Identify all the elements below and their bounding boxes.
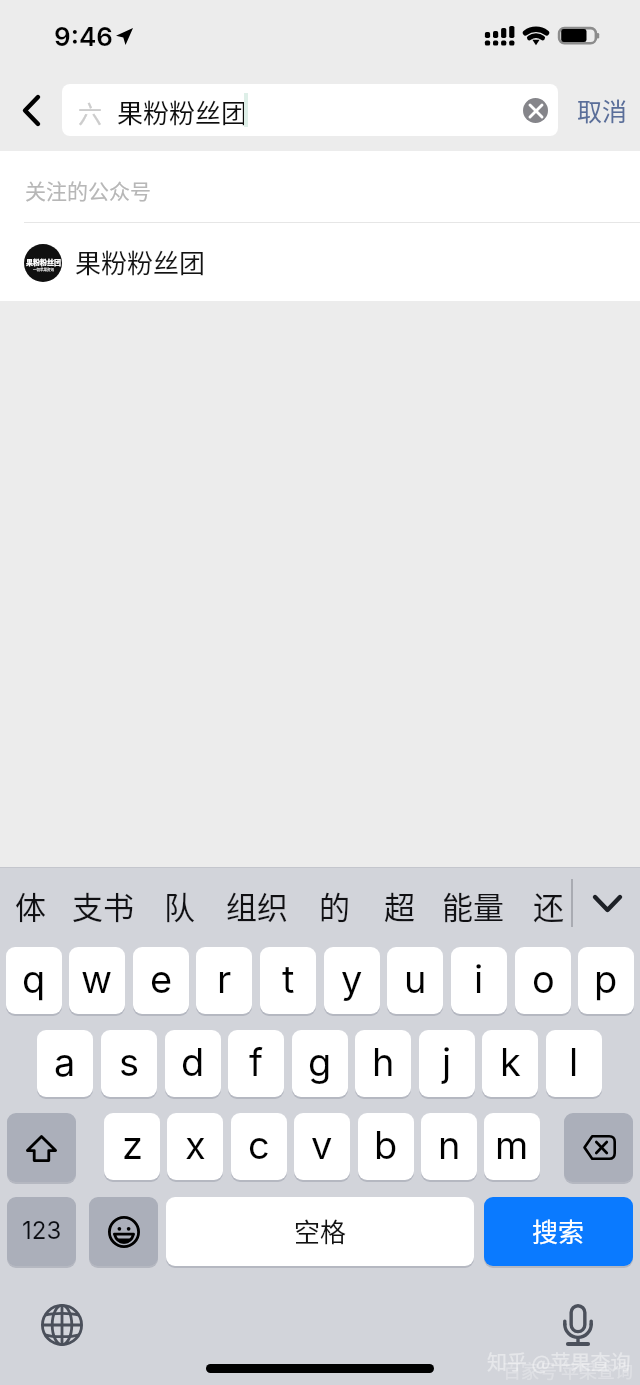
staticText: 体 (15, 883, 46, 928)
button[interactable]: l (546, 1030, 602, 1097)
button[interactable]: Back (0, 84, 62, 136)
button[interactable]: Switch keyboard (40, 1303, 84, 1347)
staticText: 能量 (442, 883, 504, 928)
staticText: f (249, 1039, 264, 1085)
button[interactable]: c (231, 1113, 287, 1180)
button[interactable]: 果粉粉丝团 (0, 223, 640, 300)
staticText: 果粉粉丝团 (26, 257, 61, 267)
button[interactable]: 还 (522, 875, 574, 935)
staticText: b (374, 1122, 398, 1168)
button[interactable]: p (578, 947, 634, 1014)
staticText: r (217, 956, 232, 1002)
button[interactable]: n (421, 1113, 477, 1180)
button[interactable]: Voice input (554, 1299, 602, 1347)
button[interactable]: s (101, 1030, 157, 1097)
staticText: g (308, 1039, 332, 1085)
button[interactable]: y (324, 947, 380, 1014)
button[interactable]: x (167, 1113, 223, 1180)
staticText: 空格 (294, 1212, 347, 1250)
button[interactable]: Clear text (523, 98, 548, 123)
button[interactable]: t (260, 947, 316, 1014)
button[interactable]: h (355, 1030, 411, 1097)
button[interactable]: g (292, 1030, 348, 1097)
button[interactable]: q (6, 947, 62, 1014)
staticText: 果粉粉丝团 (117, 93, 248, 131)
button[interactable]: w (69, 947, 125, 1014)
staticText: p (594, 956, 618, 1002)
staticText: 搜索 (532, 1212, 585, 1250)
button[interactable]: j (419, 1030, 475, 1097)
button[interactable]: 队 (153, 875, 205, 935)
staticText: j (442, 1039, 452, 1085)
button[interactable]: v (294, 1113, 350, 1180)
staticText: z (122, 1122, 143, 1168)
button[interactable]: m (484, 1113, 540, 1180)
button[interactable]: Hide keyboard (578, 867, 640, 945)
button[interactable]: i (451, 947, 507, 1014)
button[interactable]: Shift (7, 1113, 76, 1182)
button[interactable]: u (387, 947, 443, 1014)
staticText: v (311, 1122, 333, 1168)
staticText: y (341, 956, 363, 1002)
button[interactable]: z (104, 1113, 160, 1180)
button[interactable]: 六 (62, 84, 558, 136)
button[interactable]: 超 (373, 875, 425, 935)
button[interactable]: 123 (7, 1197, 76, 1266)
button[interactable]: 的 (308, 875, 360, 935)
button[interactable]: 支书 (62, 875, 144, 935)
button[interactable]: 能量 (432, 875, 514, 935)
staticText: 组织 (226, 883, 288, 928)
button[interactable]: 组织 (216, 875, 298, 935)
staticText: 支书 (72, 883, 134, 928)
staticText: 123 (22, 1216, 62, 1245)
button[interactable]: d (165, 1030, 221, 1097)
staticText: 超 (384, 883, 415, 928)
staticText: u (404, 956, 427, 1002)
staticText: a (54, 1039, 76, 1085)
button[interactable]: 搜索 (484, 1197, 633, 1266)
staticText: d (181, 1039, 205, 1085)
staticText: h (372, 1039, 395, 1085)
button[interactable]: b (358, 1113, 414, 1180)
staticText: w (81, 956, 113, 1002)
staticText: l (569, 1039, 579, 1085)
button[interactable]: a (37, 1030, 93, 1097)
button[interactable]: 取消 (564, 84, 640, 136)
staticText: 一切苹果资讯 (33, 267, 54, 272)
staticText: 百家号 苹果查询 (503, 1357, 634, 1383)
button[interactable]: Emoji keyboard (89, 1197, 158, 1266)
staticText: e (150, 956, 173, 1002)
staticText: 关注的公众号 (25, 175, 151, 205)
button[interactable]: f (228, 1030, 284, 1097)
staticText: o (532, 956, 555, 1002)
button[interactable]: 空格 (166, 1197, 474, 1266)
staticText: t (282, 956, 295, 1002)
staticText: s (119, 1039, 140, 1085)
button[interactable]: k (482, 1030, 538, 1097)
staticText: n (438, 1122, 461, 1168)
staticText: m (495, 1122, 529, 1168)
staticText: 果粉粉丝团 (75, 243, 206, 281)
staticText: c (248, 1122, 270, 1168)
button[interactable]: e (133, 947, 189, 1014)
staticText: k (500, 1039, 521, 1085)
staticText: 队 (164, 883, 195, 928)
staticText: 还 (533, 883, 564, 928)
button[interactable]: o (515, 947, 571, 1014)
staticText: 知乎 @苹果查询 (487, 1347, 631, 1376)
button[interactable]: 体 (4, 875, 56, 935)
staticText: 的 (319, 883, 350, 928)
staticText: x (185, 1122, 206, 1168)
staticText: 取消 (577, 92, 628, 128)
staticText: i (474, 956, 484, 1002)
button[interactable]: r (196, 947, 252, 1014)
button[interactable]: Backspace (564, 1113, 633, 1182)
staticText: 9:46 (54, 21, 113, 52)
staticText: 六 (78, 95, 102, 130)
staticText: q (22, 956, 46, 1002)
